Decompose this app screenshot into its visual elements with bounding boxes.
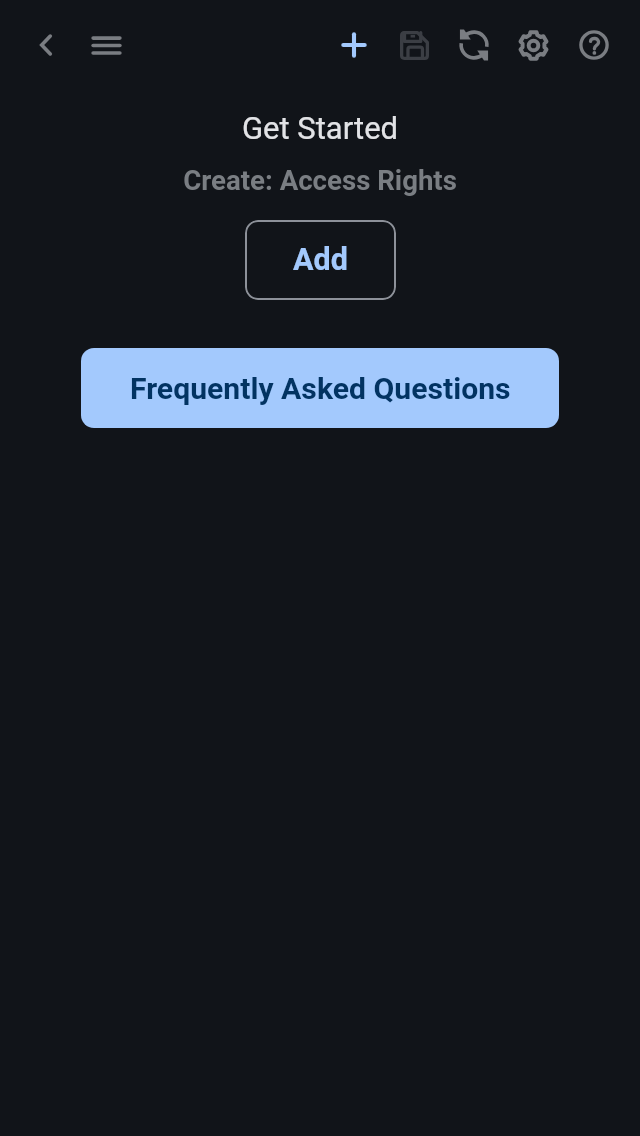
staticText: Add [293,242,348,278]
button[interactable]: Save [394,25,434,65]
button[interactable]: Frequently Asked Questions [81,348,559,428]
button[interactable]: Menu [86,25,126,65]
button[interactable]: Add [334,25,374,65]
button[interactable]: Refresh [454,25,494,65]
staticText: Frequently Asked Questions [130,371,511,406]
staticText: Create: Access Rights [0,164,640,196]
button[interactable]: Settings [513,25,553,65]
button[interactable]: Help [574,25,614,65]
button[interactable]: Back [26,25,66,65]
staticText: Get Started [0,110,640,146]
button[interactable]: Add [245,220,396,300]
